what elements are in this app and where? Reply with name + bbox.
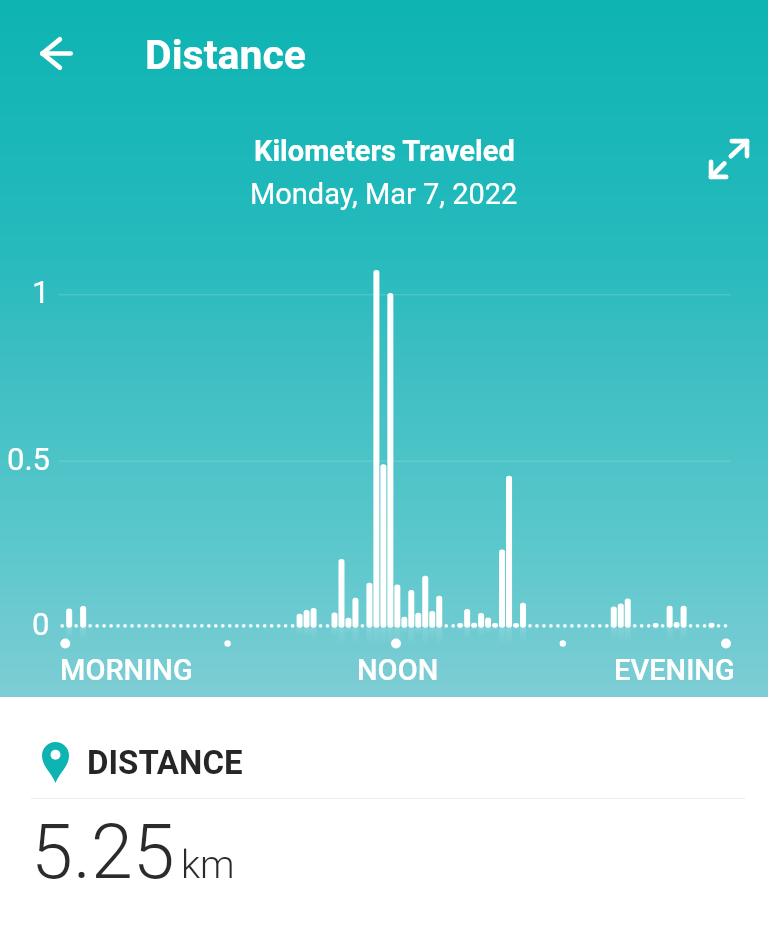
staticText: MORNING	[60, 653, 193, 685]
staticText: Distance	[145, 31, 306, 79]
staticText: DISTANCE	[87, 743, 243, 782]
staticText: 0.5	[7, 441, 51, 477]
staticText: 5.25	[31, 808, 175, 896]
staticText: Monday, Mar 7, 2022	[250, 177, 518, 211]
staticText: EVENING	[614, 653, 735, 685]
staticText: km	[181, 842, 235, 888]
staticText: 0	[32, 606, 50, 642]
button[interactable]: Back	[22, 19, 91, 88]
staticText: NOON	[357, 653, 439, 685]
button[interactable]: Expand chart	[691, 121, 767, 197]
staticText: 1	[32, 274, 50, 310]
button[interactable]: DISTANCE	[0, 729, 768, 795]
staticText: Kilometers Traveled	[254, 134, 515, 168]
